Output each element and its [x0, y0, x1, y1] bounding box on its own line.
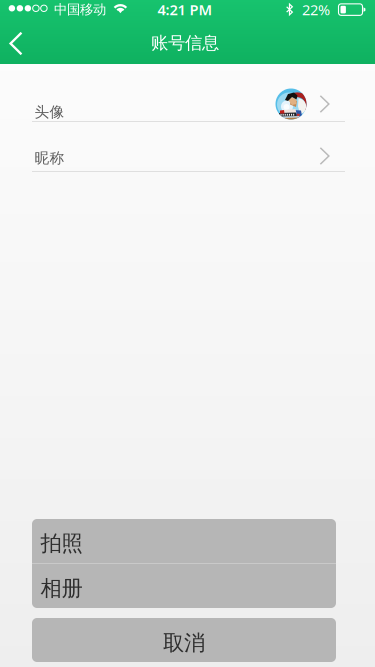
button[interactable]: 相册: [32, 564, 336, 608]
staticText: 相册: [40, 575, 82, 602]
button[interactable]: 取消: [32, 618, 336, 662]
staticText: 头像: [34, 103, 64, 121]
staticText: 4:21 PM: [157, 0, 212, 19]
button[interactable]: Back: [0, 21, 38, 65]
staticText: 22%: [302, 0, 330, 19]
button[interactable]: 头像: [0, 64, 375, 122]
staticText: 昵称: [34, 149, 64, 167]
staticText: 取消: [163, 630, 205, 656]
staticText: 账号信息: [151, 32, 219, 54]
button[interactable]: 拍照: [32, 519, 336, 563]
staticText: 中国移动: [54, 1, 106, 18]
button[interactable]: 昵称: [0, 122, 375, 172]
staticText: 拍照: [40, 530, 82, 557]
